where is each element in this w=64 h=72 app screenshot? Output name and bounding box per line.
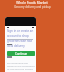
staticText: By continuing you agree to the Condition… bbox=[7, 61, 35, 72]
staticText: Whole Foods Market bbox=[16, 1, 48, 5]
staticText: Sign in or create an account to shop gro… bbox=[7, 29, 35, 48]
button[interactable]: Continue bbox=[7, 51, 35, 56]
button[interactable]: Back bbox=[6, 26, 9, 29]
staticText: Continue bbox=[15, 52, 27, 56]
button[interactable]: Menu bbox=[31, 26, 34, 29]
staticText: Grocery delivery and pickup bbox=[14, 5, 51, 9]
